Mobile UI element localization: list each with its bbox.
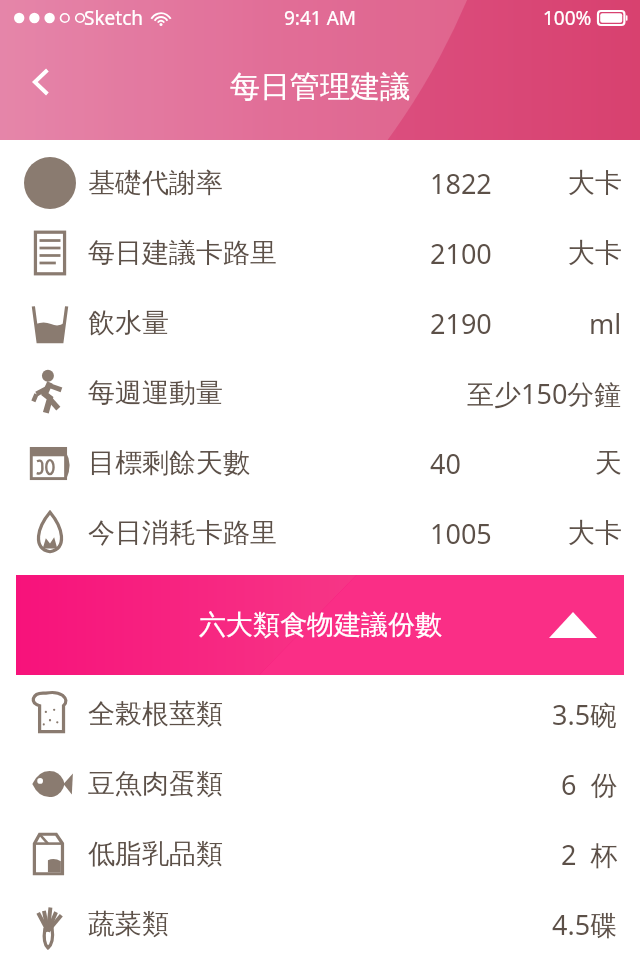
- staticText: Sketch: [84, 5, 144, 31]
- button[interactable]: 今日消耗卡路里: [0, 498, 640, 568]
- staticText: 至少150分鐘: [467, 375, 622, 412]
- staticText: 9:41 AM: [284, 5, 357, 31]
- staticText: 6 份: [561, 766, 618, 803]
- staticText: 豆魚肉蛋類: [88, 767, 223, 801]
- staticText: ml: [589, 305, 622, 342]
- button[interactable]: 蔬菜類: [0, 889, 640, 959]
- staticText: 六大類食物建議份數: [199, 608, 442, 642]
- staticText: 大卡: [568, 236, 622, 270]
- staticText: 1822: [430, 165, 492, 202]
- staticText: 每週運動量: [88, 376, 223, 410]
- staticText: 100%: [543, 5, 592, 31]
- staticText: 3.5碗: [552, 696, 618, 733]
- staticText: 今日消耗卡路里: [88, 516, 277, 550]
- staticText: 全榖根莖類: [88, 697, 223, 731]
- staticText: 2 杯: [561, 836, 618, 873]
- button[interactable]: Back: [14, 54, 70, 110]
- staticText: 蔬菜類: [88, 907, 169, 941]
- staticText: 2100: [430, 235, 492, 272]
- button[interactable]: 低脂乳品類: [0, 819, 640, 889]
- button[interactable]: 基礎代謝率: [0, 148, 640, 218]
- staticText: 40: [430, 445, 461, 482]
- staticText: 低脂乳品類: [88, 837, 223, 871]
- button[interactable]: 六大類食物建議份數: [16, 575, 624, 675]
- staticText: 大卡: [568, 166, 622, 200]
- staticText: 大卡: [568, 516, 622, 550]
- staticText: 基礎代謝率: [88, 166, 223, 200]
- staticText: 目標剩餘天數: [88, 446, 250, 480]
- button[interactable]: 全榖根莖類: [0, 679, 640, 749]
- button[interactable]: 每日建議卡路里: [0, 218, 640, 288]
- button[interactable]: 豆魚肉蛋類: [0, 749, 640, 819]
- staticText: 天: [595, 446, 622, 480]
- button[interactable]: 飲水量: [0, 288, 640, 358]
- button[interactable]: 每週運動量: [0, 358, 640, 428]
- other: Collapse: [546, 598, 600, 652]
- staticText: 每日管理建議: [230, 68, 410, 106]
- staticText: 每日建議卡路里: [88, 236, 277, 270]
- staticText: 1005: [430, 515, 492, 552]
- button[interactable]: 目標剩餘天數: [0, 428, 640, 498]
- staticText: 4.5碟: [552, 906, 618, 943]
- staticText: 飲水量: [88, 306, 169, 340]
- staticText: 2190: [430, 305, 492, 342]
